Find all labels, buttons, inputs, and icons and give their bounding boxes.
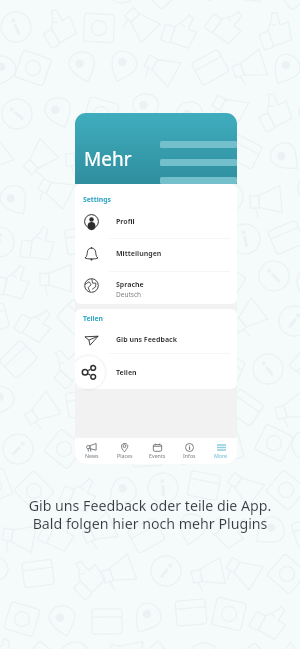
button[interactable]: Places	[108, 438, 141, 464]
button[interactable]: Sprache	[75, 269, 237, 302]
staticText: Places	[117, 452, 133, 459]
staticText: Deutsch	[116, 290, 142, 299]
staticText: Teilen	[83, 314, 104, 323]
button[interactable]: Infos	[173, 438, 205, 464]
button[interactable]: Events	[141, 438, 173, 464]
button[interactable]: Teilen	[75, 356, 237, 389]
button[interactable]: More	[205, 438, 237, 464]
staticText: Settings	[83, 195, 111, 204]
staticText: Mitteilungen	[116, 249, 162, 259]
staticText: Infos	[183, 452, 196, 459]
button[interactable]: News	[75, 438, 108, 464]
staticText: More	[214, 452, 228, 459]
button[interactable]: Profil	[75, 205, 237, 238]
staticText: News	[85, 452, 99, 459]
staticText: Gib uns Feedback	[116, 335, 178, 345]
staticText: Events	[149, 452, 166, 459]
staticText: Gib uns Feedback oder teile die App. Bal…	[0, 496, 300, 533]
button[interactable]: Gib uns Feedback	[75, 323, 237, 356]
staticText: Teilen	[116, 368, 137, 378]
staticText: Mehr	[84, 146, 132, 172]
button[interactable]: Mitteilungen	[75, 237, 237, 270]
staticText: Sprache	[116, 280, 144, 290]
staticText: Profil	[116, 217, 135, 227]
